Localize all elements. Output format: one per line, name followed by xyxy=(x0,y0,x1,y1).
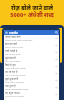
staticText: मुझे बताओ xyxy=(5,56,16,60)
button[interactable]: Play pronunciation xyxy=(55,65,58,68)
button[interactable]: चलो चलते हैं xyxy=(4,49,59,56)
button[interactable]: Play pronunciation xyxy=(55,44,58,47)
button[interactable]: Play pronunciation xyxy=(55,79,58,82)
button[interactable]: अपना काम करो xyxy=(4,35,59,42)
button[interactable]: Play pronunciation xyxy=(55,72,58,75)
staticText: कैसे हो तुम xyxy=(5,63,16,67)
button[interactable]: Play pronunciation xyxy=(55,51,58,54)
staticText: Don't talk to me xyxy=(5,45,23,48)
button[interactable]: Menu xyxy=(5,31,8,34)
button[interactable]: यह बहुत अच्छा xyxy=(4,91,59,98)
staticText: He is coming here xyxy=(5,73,26,76)
staticText: I am very hungry xyxy=(5,80,25,83)
button[interactable]: क्या हुआ है xyxy=(4,84,59,91)
button[interactable]: मुझे बताओ xyxy=(4,56,59,63)
button[interactable]: मुझे भूख लगी xyxy=(4,77,59,84)
button[interactable]: Search xyxy=(55,31,58,34)
staticText: चलो चलते हैं xyxy=(5,49,18,53)
button[interactable]: वह आ रहा है xyxy=(4,70,59,77)
button[interactable]: Play pronunciation xyxy=(55,86,58,89)
staticText: Mind your own business xyxy=(5,38,33,41)
staticText: How are you today xyxy=(5,66,27,69)
staticText: This is very good xyxy=(5,94,24,97)
staticText: शब्दकोश xyxy=(9,31,18,35)
button[interactable]: कैसे हो तुम xyxy=(4,63,59,70)
button[interactable]: Play pronunciation xyxy=(55,93,58,96)
staticText: Let us go now xyxy=(5,52,21,55)
staticText: वह आ रहा है xyxy=(5,70,18,74)
button[interactable]: Play pronunciation xyxy=(55,58,58,61)
staticText: 5000+ अंग्रेजी शब्द xyxy=(10,11,54,18)
button[interactable]: Play pronunciation xyxy=(55,37,58,40)
staticText: मुझे भूख लगी xyxy=(5,77,19,81)
staticText: रोज़ बोले जाने वाले xyxy=(11,4,53,11)
staticText: Tell me please xyxy=(5,59,21,62)
staticText: बात मत करो xyxy=(5,42,18,46)
staticText: क्या हुआ है xyxy=(5,84,16,88)
staticText: What happened here xyxy=(5,87,29,90)
button[interactable]: बात मत करो xyxy=(4,42,59,49)
staticText: अपना काम करो xyxy=(5,35,21,39)
staticText: यह बहुत अच्छा xyxy=(5,91,20,95)
